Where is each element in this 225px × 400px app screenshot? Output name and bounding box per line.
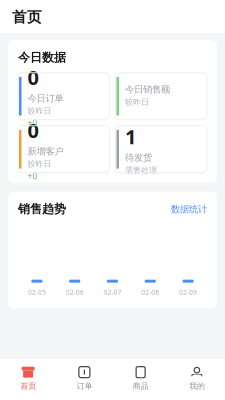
button[interactable]: 订单	[56, 359, 112, 400]
staticText: 02-05	[28, 288, 46, 296]
staticText: 0	[27, 117, 38, 144]
staticText: 待发货	[125, 152, 152, 163]
staticText: 今日数据	[18, 50, 66, 65]
staticText: 首页	[20, 381, 36, 391]
staticText: 02-06	[66, 288, 84, 296]
button[interactable]: 我的	[169, 359, 225, 400]
button[interactable]: 数据统计	[171, 203, 207, 215]
staticText: 商品	[133, 381, 149, 391]
staticText: 02-09	[179, 288, 197, 296]
staticText: 02-07	[103, 288, 121, 296]
staticText: 今日销售额	[125, 84, 170, 95]
staticText: 我的	[189, 381, 205, 391]
button[interactable]: 商品	[112, 359, 169, 400]
staticText: 需要处理	[125, 165, 157, 175]
staticText: 较昨日	[27, 159, 51, 169]
staticText: 02-08	[141, 288, 159, 296]
staticText: 1	[125, 123, 136, 150]
staticText: +0	[27, 171, 37, 181]
button[interactable]: 首页	[0, 359, 56, 400]
staticText: 今日订单	[27, 93, 63, 104]
staticText: 较昨日	[125, 97, 149, 107]
staticText: +0	[27, 118, 37, 128]
staticText: 新增客户	[27, 146, 63, 157]
staticText: 销售趋势	[18, 202, 66, 216]
staticText: 数据统计	[171, 203, 207, 215]
staticText: 较昨日	[27, 106, 51, 116]
staticText: 订单	[76, 381, 92, 391]
staticText: 0	[27, 64, 38, 91]
staticText: 首页	[12, 8, 42, 26]
